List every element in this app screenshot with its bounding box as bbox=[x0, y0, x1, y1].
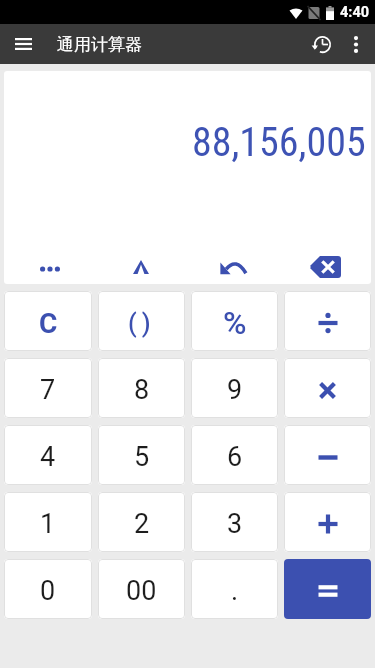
button[interactable]: 1 bbox=[4, 492, 92, 552]
button[interactable] bbox=[187, 251, 279, 283]
button[interactable]: 3 bbox=[191, 492, 278, 552]
button[interactable]: 88,156,005 bbox=[4, 71, 371, 284]
button[interactable] bbox=[284, 358, 371, 418]
button[interactable] bbox=[0, 24, 45, 64]
button[interactable] bbox=[284, 291, 371, 351]
button[interactable]: 00 bbox=[98, 559, 185, 619]
button[interactable]: % bbox=[191, 291, 278, 351]
button[interactable] bbox=[4, 251, 95, 283]
button[interactable] bbox=[306, 24, 337, 64]
button[interactable]: 4 bbox=[4, 425, 92, 485]
button[interactable]: 6 bbox=[191, 425, 278, 485]
staticText: C bbox=[39, 307, 58, 340]
button[interactable] bbox=[284, 492, 371, 552]
staticText: 7 bbox=[40, 374, 56, 406]
staticText: () bbox=[128, 309, 156, 338]
button[interactable] bbox=[337, 24, 375, 64]
button[interactable]: 2 bbox=[98, 492, 185, 552]
button[interactable]: 0 bbox=[4, 559, 92, 619]
button[interactable] bbox=[284, 559, 371, 619]
button[interactable] bbox=[279, 251, 371, 283]
button[interactable]: 8 bbox=[98, 358, 185, 418]
staticText: 0 bbox=[40, 575, 56, 607]
staticText: 9 bbox=[227, 374, 243, 406]
staticText: 8 bbox=[134, 374, 150, 406]
button[interactable] bbox=[284, 425, 371, 485]
staticText: 5 bbox=[134, 441, 150, 473]
button[interactable]: 9 bbox=[191, 358, 278, 418]
staticText: 6 bbox=[227, 441, 243, 473]
button[interactable] bbox=[95, 251, 187, 283]
button[interactable]: 5 bbox=[98, 425, 185, 485]
staticText: 4:40 bbox=[340, 4, 370, 21]
button[interactable]: . bbox=[191, 559, 278, 619]
staticText: 1 bbox=[40, 508, 56, 540]
staticText: 3 bbox=[227, 508, 243, 540]
staticText: 通用计算器 bbox=[57, 34, 142, 55]
staticText: 88,156,005 bbox=[192, 119, 366, 166]
staticText: % bbox=[223, 304, 247, 342]
button[interactable]: C bbox=[4, 291, 92, 351]
staticText: 2 bbox=[134, 508, 150, 540]
button[interactable]: () bbox=[98, 291, 185, 351]
staticText: . bbox=[231, 575, 239, 607]
button[interactable]: 7 bbox=[4, 358, 92, 418]
staticText: 4 bbox=[40, 441, 56, 473]
staticText: 00 bbox=[126, 575, 157, 607]
